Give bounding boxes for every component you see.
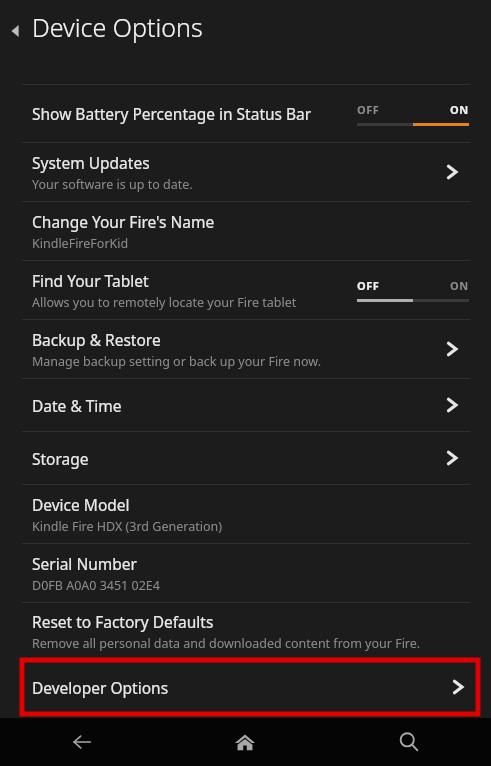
- staticText: Backup & Restore: [32, 329, 161, 350]
- button[interactable]: Device Model: [0, 485, 491, 543]
- button[interactable]: Serial Number: [0, 544, 491, 602]
- button[interactable]: System Updates: [435, 155, 469, 189]
- button[interactable]: Show Battery Percentage in Status Bar: [0, 85, 491, 142]
- staticText: Reset to Factory Defaults: [32, 611, 214, 632]
- button[interactable]: Home: [163, 718, 327, 766]
- staticText: Change Your Fire's Name: [32, 211, 215, 232]
- staticText: KindleFireForKid: [32, 235, 129, 252]
- staticText: Serial Number: [32, 553, 137, 574]
- button[interactable]: Back: [0, 10, 32, 42]
- button[interactable]: Date & Time: [435, 388, 469, 422]
- button[interactable]: Find Your Tablet: [0, 261, 491, 319]
- staticText: Developer Options: [32, 677, 447, 698]
- button[interactable]: Backup & Restore: [0, 320, 491, 378]
- button[interactable]: Change Your Fire's Name: [0, 202, 491, 260]
- staticText: System Updates: [32, 152, 150, 173]
- button[interactable]: System Updates: [0, 143, 491, 201]
- button[interactable]: Backup & Restore: [435, 332, 469, 366]
- button[interactable]: Toggle off: [357, 278, 469, 302]
- staticText: Show Battery Percentage in Status Bar: [32, 103, 312, 124]
- button[interactable]: Storage: [435, 441, 469, 475]
- staticText: Storage: [32, 448, 89, 469]
- staticText: Allows you to remotely locate your Fire …: [32, 294, 297, 311]
- staticText: Kindle Fire HDX (3rd Generation): [32, 518, 222, 535]
- button[interactable]: Search: [327, 718, 491, 766]
- staticText: OFF: [357, 102, 380, 117]
- staticText: Device Options: [32, 10, 203, 44]
- staticText: D0FB A0A0 3451 02E4: [32, 577, 160, 594]
- button[interactable]: Toggle on: [357, 102, 469, 126]
- button[interactable]: Back: [0, 718, 163, 766]
- staticText: Your software is up to date.: [32, 176, 193, 193]
- staticText: Device Model: [32, 494, 130, 515]
- staticText: Remove all personal data and downloaded …: [32, 635, 421, 652]
- button[interactable]: Developer Options: [22, 660, 478, 714]
- staticText: Find Your Tablet: [32, 270, 149, 291]
- button[interactable]: Storage: [0, 432, 491, 484]
- staticText: ON: [450, 102, 469, 117]
- staticText: Date & Time: [32, 395, 122, 416]
- staticText: OFF: [357, 278, 380, 293]
- staticText: Manage backup setting or back up your Fi…: [32, 353, 322, 370]
- staticText: ON: [450, 278, 469, 293]
- button[interactable]: Date & Time: [0, 379, 491, 431]
- button[interactable]: Reset to Factory Defaults: [0, 603, 491, 660]
